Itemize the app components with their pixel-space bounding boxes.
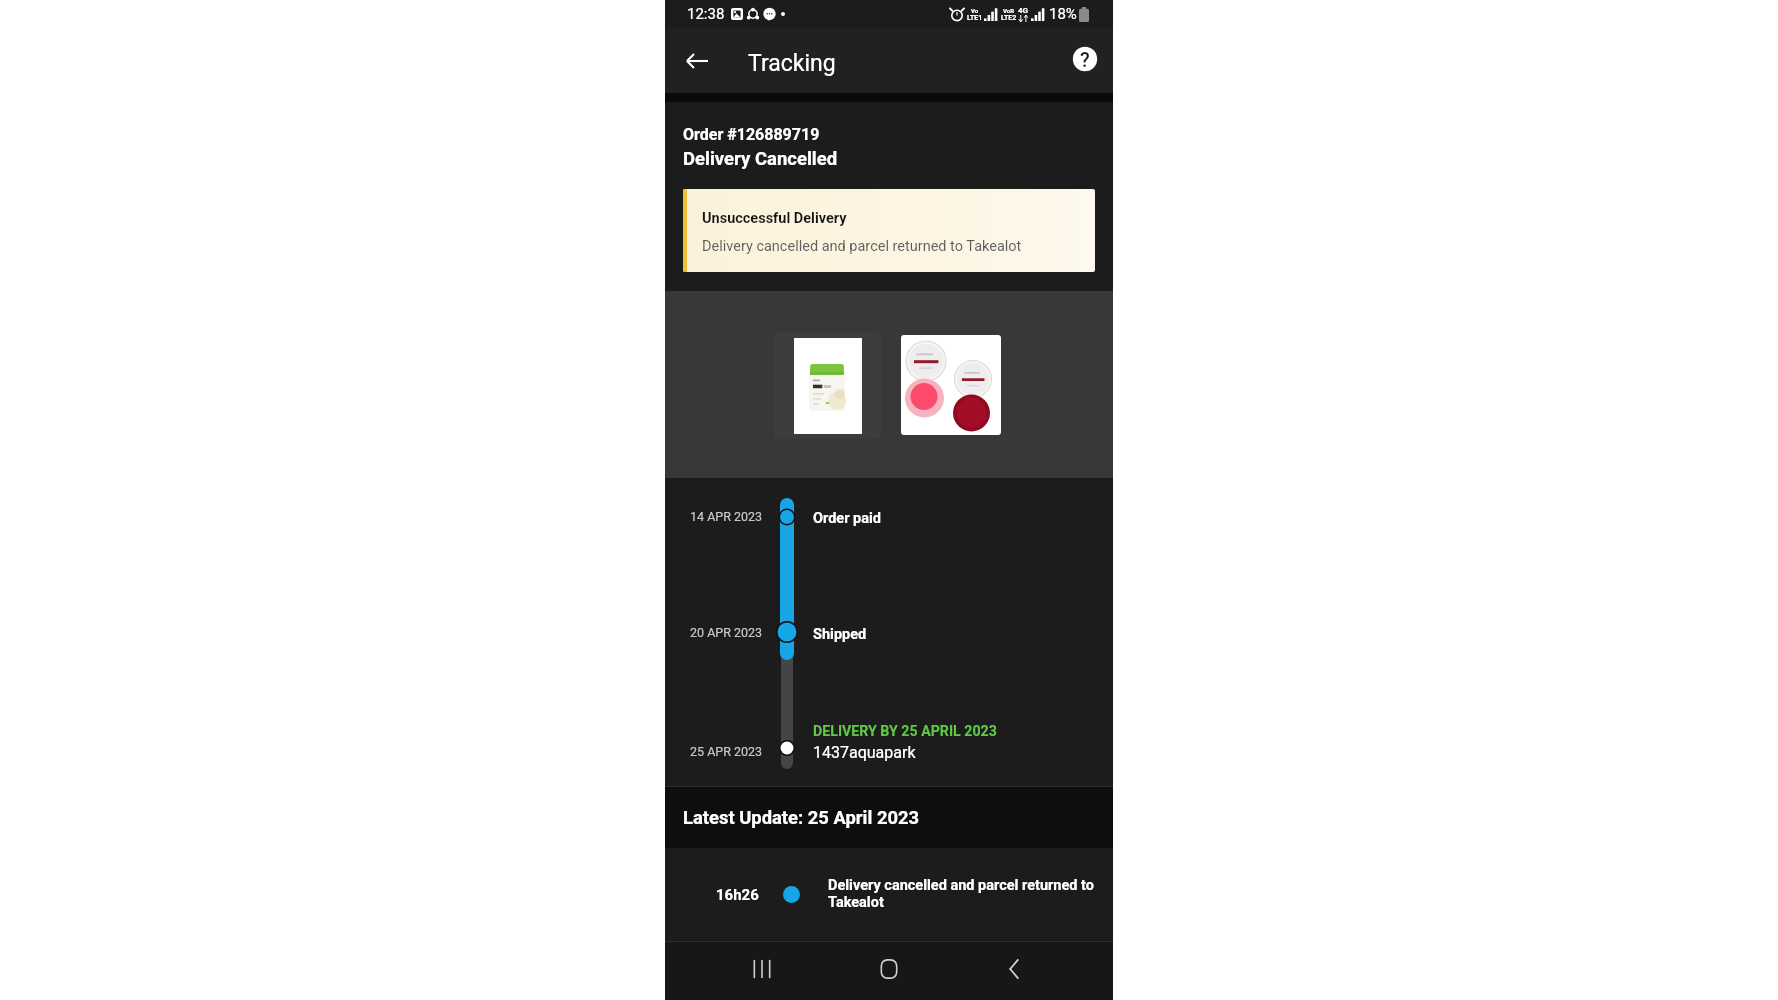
staticText: Delivery cancelled and parcel returned t… xyxy=(702,238,1022,255)
staticText: 14 APR 2023 xyxy=(690,509,763,524)
staticText: Unsuccessful Delivery xyxy=(702,210,847,227)
button[interactable]: Recent apps xyxy=(737,944,787,994)
staticText: ? xyxy=(1080,48,1090,71)
staticText: Tracking xyxy=(748,50,836,77)
staticText: Shipped xyxy=(813,626,867,643)
staticText: DELIVERY BY 25 APRIL 2023 xyxy=(813,723,997,740)
staticText: Order paid xyxy=(813,510,881,527)
staticText: LTE2 xyxy=(1001,14,1017,22)
staticText: Delivery Cancelled xyxy=(683,148,838,170)
staticText: 12:38 xyxy=(687,5,725,23)
staticText: 18% xyxy=(1049,5,1077,23)
staticText: 25 APR 2023 xyxy=(690,744,763,759)
button[interactable] xyxy=(901,335,1001,435)
staticText: 1437aquapark xyxy=(813,743,916,762)
staticText: Order #126889719 xyxy=(683,125,820,144)
staticText: 4G xyxy=(1018,6,1029,15)
button[interactable] xyxy=(774,332,881,439)
staticText: VoR xyxy=(1003,7,1015,14)
staticText: 16h26 xyxy=(716,886,759,904)
staticText: LTE1 xyxy=(967,14,983,22)
staticText: Latest Update: 25 April 2023 xyxy=(683,807,920,829)
button[interactable]: 16h26 xyxy=(665,848,1113,942)
staticText: Delivery cancelled and parcel returned t… xyxy=(828,877,1098,911)
button[interactable]: Back xyxy=(674,38,719,83)
button[interactable]: Help xyxy=(1063,37,1107,81)
button[interactable]: Unsuccessful Delivery xyxy=(683,189,1095,272)
staticText: 20 APR 2023 xyxy=(690,625,763,640)
button[interactable]: Home xyxy=(864,944,914,994)
button[interactable]: Back xyxy=(990,944,1040,994)
staticText: Vo xyxy=(971,7,979,14)
